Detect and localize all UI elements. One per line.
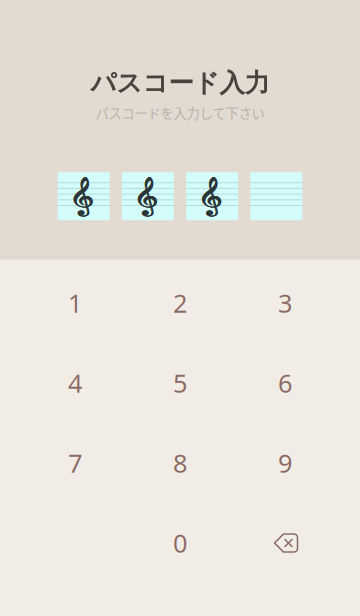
button[interactable]: Delete bbox=[232, 503, 337, 583]
staticText: 4 bbox=[68, 366, 82, 400]
staticText: 𝄞 bbox=[138, 175, 155, 218]
staticText: 𝄞 bbox=[74, 175, 91, 218]
button[interactable]: 2 bbox=[127, 263, 232, 343]
staticText: 𝄞 bbox=[138, 175, 155, 218]
button[interactable]: 9 bbox=[232, 423, 337, 503]
staticText: 𝄞 bbox=[203, 175, 220, 218]
staticText: 2 bbox=[173, 286, 187, 320]
button[interactable]: 8 bbox=[127, 423, 232, 503]
staticText: 𝄞 bbox=[74, 175, 91, 218]
staticText: 8 bbox=[173, 446, 187, 480]
staticText: 𝄞 bbox=[139, 175, 156, 218]
staticText: 1 bbox=[68, 286, 82, 320]
button[interactable]: 7 bbox=[22, 423, 127, 503]
button[interactable]: 3 bbox=[232, 263, 337, 343]
staticText: 𝄞 bbox=[203, 175, 220, 218]
staticText: 0 bbox=[173, 526, 187, 560]
staticText: 𝄞 bbox=[202, 175, 219, 218]
staticText: 𝄞 bbox=[75, 175, 92, 218]
button[interactable]: 6 bbox=[232, 343, 337, 423]
staticText: 5 bbox=[173, 366, 187, 400]
button[interactable]: 5 bbox=[127, 343, 232, 423]
staticText: 3 bbox=[278, 286, 292, 320]
button[interactable]: 0 bbox=[127, 503, 232, 583]
staticText: 6 bbox=[278, 366, 292, 400]
staticText: 𝄞 bbox=[75, 175, 92, 218]
staticText: 7 bbox=[68, 446, 82, 480]
staticText: パスコード入力 bbox=[90, 67, 269, 99]
staticText: パスコードを入力して下さい bbox=[95, 103, 264, 122]
button[interactable]: 1 bbox=[22, 263, 127, 343]
staticText: 𝄞 bbox=[139, 175, 156, 218]
button[interactable]: 4 bbox=[22, 343, 127, 423]
staticText: 𝄞 bbox=[203, 175, 220, 218]
staticText: 9 bbox=[278, 446, 292, 480]
